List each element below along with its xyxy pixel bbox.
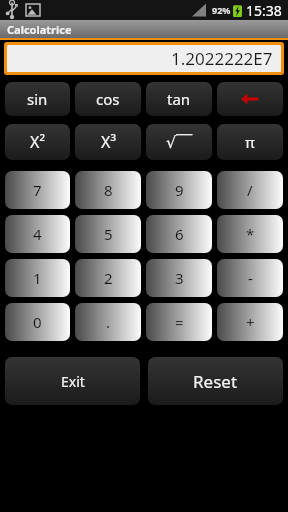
staticText: π xyxy=(245,132,255,152)
staticText: 4 xyxy=(33,224,42,244)
staticText: sin xyxy=(27,89,48,109)
staticText: + xyxy=(246,312,255,332)
staticText: - xyxy=(248,268,253,288)
button[interactable]: √‾‾ xyxy=(146,124,212,160)
button[interactable]: X² xyxy=(5,124,70,160)
button[interactable]: tan xyxy=(146,82,212,116)
staticText: 0 xyxy=(33,312,42,332)
staticText: 1 xyxy=(33,268,42,288)
button[interactable]: 7 xyxy=(5,171,70,209)
staticText: . xyxy=(106,312,111,332)
button[interactable]: 3 xyxy=(146,259,212,297)
button[interactable]: . xyxy=(75,303,141,341)
staticText: 92% xyxy=(212,4,231,16)
button[interactable]: 0 xyxy=(5,303,70,341)
staticText: 15:38 xyxy=(246,1,282,20)
button[interactable]: + xyxy=(217,303,283,341)
staticText: 6 xyxy=(175,224,184,244)
button[interactable]: sin xyxy=(5,82,70,116)
button[interactable]: - xyxy=(217,259,283,297)
button[interactable]: = xyxy=(146,303,212,341)
staticText: 2 xyxy=(104,268,113,288)
button[interactable]: / xyxy=(217,171,283,209)
button[interactable]: Exit xyxy=(5,357,140,405)
staticText: X³ xyxy=(101,131,116,153)
staticText: Exit xyxy=(61,372,85,391)
button[interactable]: 5 xyxy=(75,215,141,253)
staticText: 7 xyxy=(33,180,42,200)
button[interactable]: 6 xyxy=(146,215,212,253)
button[interactable]: Reset xyxy=(148,357,283,405)
staticText: * xyxy=(246,224,255,244)
staticText: Calcolatrice xyxy=(7,22,72,37)
staticText: / xyxy=(247,180,253,200)
button[interactable]: 1 xyxy=(5,259,70,297)
staticText: 9 xyxy=(175,180,184,200)
staticText: cos xyxy=(96,89,120,109)
staticText: Reset xyxy=(193,370,238,393)
staticText: = xyxy=(175,312,184,332)
button[interactable]: 8 xyxy=(75,171,141,209)
button[interactable]: * xyxy=(217,215,283,253)
staticText: tan xyxy=(167,89,191,109)
staticText: 3 xyxy=(175,268,184,288)
button[interactable]: 1.2022222E7 xyxy=(7,45,281,72)
staticText: 5 xyxy=(104,224,113,244)
button[interactable]: X³ xyxy=(75,124,141,160)
staticText: X² xyxy=(30,131,45,153)
button[interactable]: cos xyxy=(75,82,141,116)
button[interactable]: 4 xyxy=(5,215,70,253)
staticText: 8 xyxy=(104,180,113,200)
staticText: 1.2022222E7 xyxy=(171,47,273,70)
staticText: √‾‾ xyxy=(166,131,193,153)
button[interactable]: 2 xyxy=(75,259,141,297)
button[interactable]: π xyxy=(217,124,283,160)
button[interactable]: Backspace xyxy=(217,82,283,116)
button[interactable]: 9 xyxy=(146,171,212,209)
